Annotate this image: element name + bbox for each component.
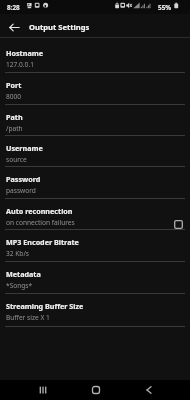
button[interactable]: MP3 Encoder Bitrate [0,230,190,262]
button[interactable]: Hostname [0,41,190,73]
staticText: MP3 Encoder Bitrate [6,237,79,247]
button[interactable]: Home [86,380,105,399]
button[interactable]: Path [0,105,190,136]
button[interactable]: Back [139,380,158,399]
button[interactable]: Password [0,167,190,199]
staticText: 8:28 [7,3,20,12]
staticText: 32 Kb/s [6,249,30,258]
button[interactable]: Metadata [0,262,190,294]
staticText: password [6,186,36,195]
button[interactable]: Port [0,73,190,105]
staticText: 55% [158,3,172,12]
staticText: Auto reconnection [6,206,73,216]
button[interactable]: Navigate up [5,18,24,37]
staticText: /path [6,124,23,133]
staticText: 8000 [6,92,22,101]
staticText: Hostname [6,48,43,58]
staticText: Buffer size X 1 [6,313,50,322]
staticText: Path [6,112,23,122]
button[interactable]: Streaming Buffer Size [0,294,190,327]
staticText: on connection failures [6,218,75,227]
staticText: Username [6,143,43,153]
button[interactable]: Username [0,136,190,167]
staticText: Output Settings [29,22,90,32]
staticText: Password [6,174,41,184]
button[interactable]: Recent apps [33,380,52,399]
staticText: Streaming Buffer Size [6,301,84,311]
staticText: *Songs* [6,281,33,290]
staticText: 127.0.0.1 [6,60,34,69]
staticText: source [6,155,27,164]
button[interactable]: Auto reconnection [0,199,190,230]
button[interactable]: Auto reconnection checkbox [174,220,183,229]
staticText: Port [6,80,22,90]
staticText: Metadata [6,269,41,279]
